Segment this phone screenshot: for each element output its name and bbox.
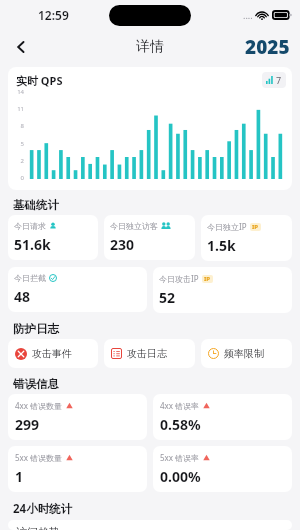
staticText: 实时 QPS: [16, 73, 63, 88]
staticText: 5xx 错误数量: [15, 452, 63, 463]
button[interactable]: 2025: [245, 34, 290, 60]
staticText: 7: [276, 74, 282, 86]
staticText: 48: [14, 287, 31, 306]
staticText: 防护日志: [13, 322, 59, 336]
staticText: IP: [204, 275, 211, 283]
staticText: 230: [110, 235, 135, 254]
staticText: 0.00%: [160, 467, 201, 486]
staticText: 访问趋势: [16, 525, 60, 530]
staticText: 1.5k: [207, 236, 236, 255]
button[interactable]: 4xx 错误数量: [8, 394, 147, 440]
staticText: 0: [13, 174, 24, 182]
staticText: IP: [252, 223, 259, 231]
staticText: 8: [13, 122, 24, 130]
staticText: 今日独立访客: [110, 221, 158, 231]
button[interactable]: 攻击日志: [104, 339, 195, 368]
staticText: 14: [13, 88, 24, 96]
button[interactable]: 4xx 错误率: [153, 394, 292, 440]
staticText: 4xx 错误率: [160, 400, 200, 411]
staticText: 12:59: [38, 7, 69, 23]
staticText: 错误信息: [13, 377, 59, 391]
button[interactable]: 5xx 错误率: [153, 446, 292, 492]
staticText: 5xx 错误率: [160, 452, 200, 463]
staticText: 24小时统计: [13, 501, 73, 517]
button[interactable]: Back: [6, 32, 36, 62]
staticText: 今日拦截: [14, 273, 46, 283]
staticText: 5: [13, 140, 24, 148]
staticText: 攻击事件: [32, 347, 72, 360]
staticText: 今日攻击IP: [159, 273, 199, 284]
button[interactable]: 今日独立访客: [104, 215, 195, 260]
staticText: 4xx 错误数量: [15, 400, 63, 411]
staticText: 299: [15, 415, 40, 434]
staticText: 2: [13, 157, 24, 165]
button[interactable]: 今日拦截: [8, 267, 147, 312]
staticText: 今日独立IP: [207, 221, 247, 232]
staticText: 基础统计: [13, 198, 59, 212]
button[interactable]: 5xx 错误数量: [8, 446, 147, 492]
staticText: ....: [243, 9, 253, 21]
staticText: 0.58%: [160, 415, 201, 434]
staticText: 1: [15, 467, 24, 486]
button[interactable]: 频率限制: [201, 339, 292, 368]
staticText: 详情: [136, 38, 164, 56]
staticText: 52: [159, 288, 176, 307]
staticText: 11: [13, 105, 24, 113]
staticText: 今日请求: [14, 221, 46, 231]
staticText: 频率限制: [224, 347, 264, 360]
button[interactable]: 今日请求: [8, 215, 98, 260]
staticText: 51.6k: [14, 235, 51, 254]
staticText: 2025: [245, 34, 290, 60]
button[interactable]: 攻击事件: [8, 339, 98, 368]
staticText: 攻击日志: [127, 347, 167, 360]
button[interactable]: 今日独立IP: [201, 215, 292, 261]
button[interactable]: 今日攻击IP: [153, 267, 292, 313]
